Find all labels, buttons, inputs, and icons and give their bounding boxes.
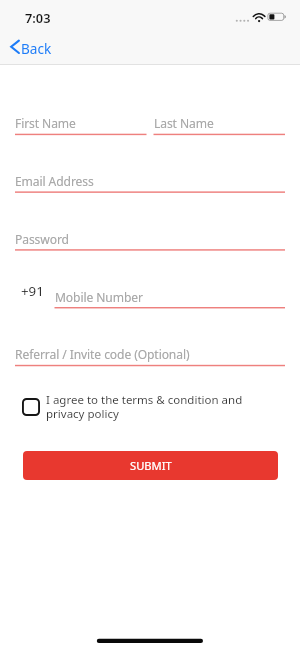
- button[interactable]: Referral / Invite code (Optional): [15, 346, 285, 362]
- staticText: Password: [15, 231, 69, 247]
- button[interactable]: First Name: [15, 115, 147, 131]
- button[interactable]: Back: [4, 32, 58, 61]
- button[interactable]: Last Name: [154, 115, 285, 131]
- button[interactable]: SUBMIT: [23, 451, 278, 480]
- staticText: +91: [21, 282, 44, 300]
- button[interactable]: Mobile Number: [55, 289, 285, 305]
- button[interactable]: Accept terms and conditions: [22, 392, 252, 422]
- staticText: I agree to the terms & condition and pri…: [46, 392, 252, 422]
- staticText: Last Name: [154, 115, 214, 131]
- staticText: Mobile Number: [55, 289, 143, 305]
- staticText: Email Address: [15, 173, 94, 189]
- staticText: First Name: [15, 115, 76, 131]
- staticText: 7:03: [25, 9, 51, 26]
- button[interactable]: Email Address: [15, 173, 285, 189]
- staticText: Referral / Invite code (Optional): [15, 346, 190, 362]
- button[interactable]: Password: [15, 231, 285, 247]
- staticText: SUBMIT: [130, 458, 172, 473]
- staticText: Back: [21, 39, 52, 58]
- other: Accept terms and conditions: [22, 398, 40, 416]
